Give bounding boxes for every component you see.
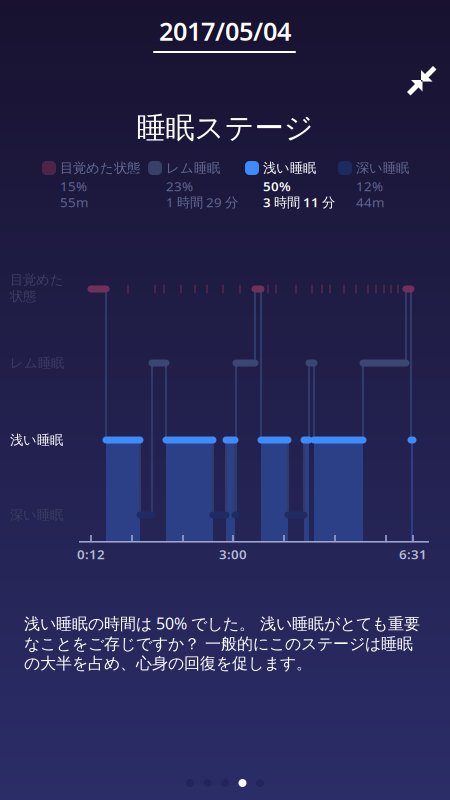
staticText: 浅い睡眠 bbox=[263, 160, 316, 176]
button[interactable]: 2017/05/04 bbox=[0, 0, 450, 800]
staticText: 睡眠ステージ bbox=[136, 110, 313, 146]
button[interactable]: レム睡眠 bbox=[0, 0, 450, 800]
staticText: 12% bbox=[356, 177, 383, 195]
staticText: レム睡眠 bbox=[166, 160, 220, 176]
staticText: 深い睡眠 bbox=[10, 507, 63, 523]
staticText: 深い睡眠 bbox=[356, 160, 409, 176]
button[interactable]: 浅い睡眠 bbox=[0, 0, 450, 800]
staticText: 1 時間 29 分 bbox=[166, 193, 238, 211]
button[interactable]: 目覚めた状態 bbox=[0, 0, 450, 800]
staticText: 2017/05/04 bbox=[159, 14, 291, 48]
button[interactable]: 深い睡眠 bbox=[0, 0, 450, 800]
staticText: 23% bbox=[166, 177, 193, 195]
staticText: 浅い睡眠 bbox=[10, 432, 63, 448]
staticText: 55m bbox=[60, 193, 88, 211]
staticText: 44m bbox=[356, 193, 384, 211]
staticText: 3 時間 11 分 bbox=[263, 193, 335, 211]
staticText: 0:12 bbox=[77, 545, 105, 563]
staticText: レム睡眠 bbox=[10, 355, 64, 371]
staticText: 15% bbox=[60, 177, 87, 195]
staticText: 3:00 bbox=[219, 545, 247, 563]
staticText: 6:31 bbox=[399, 545, 427, 563]
staticText: 目覚めた状態 bbox=[10, 272, 64, 304]
staticText: 50% bbox=[263, 177, 291, 195]
staticText: 浅い睡眠の時間は 50% でした。 浅い睡眠がとても重要なことをご存じですか？ … bbox=[24, 613, 420, 673]
staticText: 目覚めた状態 bbox=[60, 160, 140, 176]
button[interactable]: Collapse bbox=[402, 61, 438, 97]
